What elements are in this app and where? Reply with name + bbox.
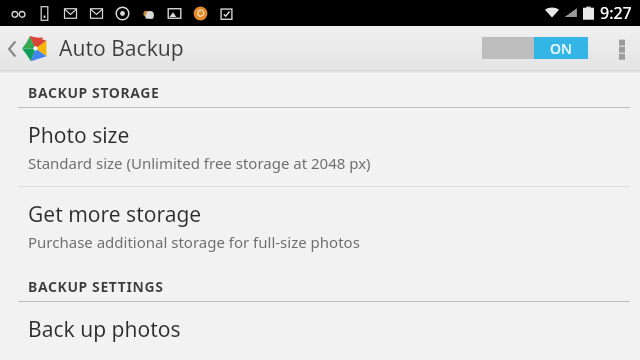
staticText: BACKUP SETTINGS <box>28 277 164 296</box>
button[interactable]: Navigate up <box>0 29 51 68</box>
staticText: Purchase additional storage for full-siz… <box>28 232 360 252</box>
staticText: Photo size <box>28 121 130 150</box>
button[interactable]: Back up photos <box>0 302 640 360</box>
button[interactable]: Photo size <box>0 108 640 186</box>
staticText: BACKUP STORAGE <box>28 83 160 102</box>
button[interactable]: ON <box>478 33 592 63</box>
button[interactable]: More options <box>608 28 636 68</box>
button[interactable]: Get more storage <box>0 187 640 265</box>
staticText: Get more storage <box>28 200 202 229</box>
staticText: Standard size (Unlimited free storage at… <box>28 153 371 173</box>
staticText: Back up photos <box>28 315 181 344</box>
staticText: Auto Backup <box>59 34 184 63</box>
staticText: 9:27 <box>600 2 632 24</box>
staticText: ON <box>550 39 572 58</box>
